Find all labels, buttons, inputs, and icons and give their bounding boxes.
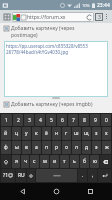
staticText: 2 [17,117,20,124]
staticText: д [85,144,89,151]
button[interactable]: 8 [79,114,89,126]
button[interactable]: Home [44,183,68,200]
staticText: э [95,144,98,151]
button[interactable]: . [78,169,87,182]
staticText: 0 [105,117,108,124]
button[interactable]: ?1☺ [1,169,15,182]
staticText: 3 [98,14,101,21]
staticText: 5 [50,117,53,124]
staticText: 4 [39,117,42,124]
button[interactable]: ф [1,141,11,154]
button[interactable]: п [42,141,51,154]
button[interactable]: э [92,141,101,154]
button[interactable]: Key [100,155,111,168]
staticText: с [33,158,36,165]
staticText: о [65,144,68,151]
button[interactable]: ё [42,127,51,140]
staticText: х [105,130,108,137]
button[interactable]: Back [10,183,34,200]
staticText: 7 [72,117,75,124]
button[interactable]: 1 [1,114,12,126]
staticText: 3 [28,117,31,124]
button[interactable]: й [1,127,11,140]
button[interactable]: RU [16,169,26,182]
button[interactable]: ь [70,155,79,168]
button[interactable]: 3 [24,114,34,126]
button[interactable]: н [52,127,61,140]
staticText: ь [73,158,76,165]
staticText: https://pp.userapi.com/c855328/v8553 [6,43,88,49]
staticText: ф [4,144,8,151]
staticText: н [55,130,59,137]
staticText: р [55,144,59,151]
button[interactable]: у [22,127,31,140]
button[interactable]: ш [72,127,81,140]
staticText: , [92,172,94,179]
button[interactable]: х [102,127,111,140]
staticText: https://forum.xx [27,14,66,21]
button[interactable]: Key [1,155,11,168]
button[interactable]: в [22,141,31,154]
button[interactable]: Recent apps [78,183,102,200]
button[interactable]: з [92,127,101,140]
staticText: б [83,158,86,165]
button[interactable]: Key [27,169,35,182]
button[interactable]: м [40,155,49,168]
button[interactable]: ч [21,155,29,168]
button[interactable]: https://pp.userapi.com/c855328/v8553 [4,41,108,97]
staticText: м [43,158,47,165]
button[interactable]: 9 [90,114,100,126]
staticText: ю [93,158,97,165]
button[interactable]: л [72,141,81,154]
staticText: 9 [94,117,97,124]
button[interactable]: г [62,127,71,140]
staticText: ц [15,130,19,137]
button[interactable]: 2 [13,114,23,126]
button[interactable]: Добавить картинку (через imgbb) [4,101,108,108]
button[interactable]: Key [98,169,111,182]
staticText: л [75,144,78,151]
staticText: 10% [82,3,90,8]
button[interactable]: , [88,169,97,182]
button[interactable]: Добавить картинку (через [4,25,108,39]
button[interactable]: ц [12,127,21,140]
button[interactable]: More options [103,11,110,22]
button[interactable]: б [80,155,89,168]
staticText: п [45,144,49,151]
button[interactable]: 5 [46,114,56,126]
button[interactable]: д [82,141,91,154]
staticText: 23:44 [97,2,110,9]
button[interactable]: т [60,155,69,168]
staticText: т [63,158,66,165]
button[interactable]: р [52,141,61,154]
button[interactable]: ы [12,141,21,154]
button[interactable]: щ [82,127,91,140]
staticText: щ [84,130,89,137]
button[interactable]: 0 [101,114,111,126]
button[interactable]: Open tabs [95,13,103,21]
button[interactable]: ж [102,141,111,154]
button[interactable]: 6 [57,114,67,126]
staticText: г [65,130,68,137]
staticText: ?1☺ [3,172,14,179]
staticText: ш [74,130,79,137]
button[interactable]: я [12,155,20,168]
button[interactable]: с [30,155,39,168]
button[interactable]: ю [90,155,99,168]
button[interactable]: Tabs [2,12,11,21]
staticText: ж [105,144,109,151]
staticText: ы [15,144,19,151]
button[interactable]: Key [36,169,77,182]
button[interactable]: и [50,155,59,168]
button[interactable]: к [32,127,41,140]
button[interactable]: https://forum.xx [12,12,94,22]
button[interactable]: 4 [35,114,45,126]
staticText: и [53,158,57,165]
button[interactable]: о [62,141,71,154]
staticText: 1 [5,117,8,124]
staticText: 28778/44bad/s4tYGv4030.jpg [6,49,68,55]
button[interactable]: 7 [68,114,78,126]
button[interactable]: а [32,141,41,154]
button[interactable]: Reload [86,14,93,21]
staticText: в [25,144,28,151]
